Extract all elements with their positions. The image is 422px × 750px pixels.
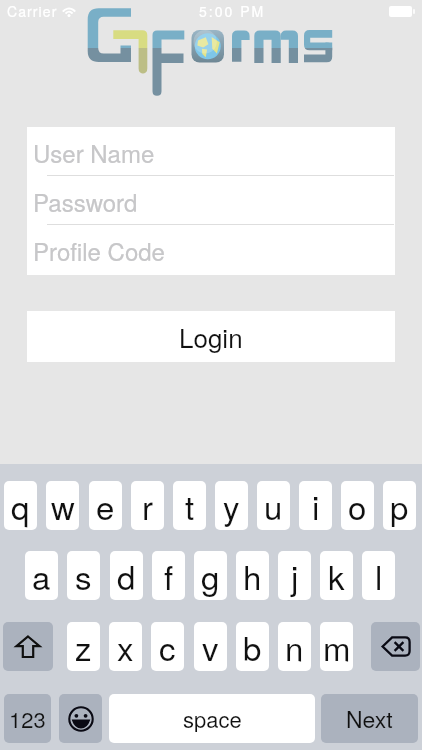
staticText: p bbox=[390, 482, 409, 529]
button[interactable]: z bbox=[67, 622, 100, 671]
staticText: f bbox=[164, 552, 174, 599]
button[interactable]: s bbox=[67, 551, 100, 600]
staticText: Login bbox=[179, 318, 243, 355]
button[interactable]: b bbox=[236, 622, 269, 671]
button[interactable]: Password bbox=[27, 176, 395, 225]
button[interactable]: d bbox=[110, 551, 143, 600]
button[interactable]: e bbox=[89, 481, 122, 530]
staticText: Next bbox=[346, 702, 393, 735]
button[interactable]: p bbox=[383, 481, 416, 530]
button[interactable]: Emoji bbox=[59, 694, 102, 743]
button[interactable]: User Name bbox=[27, 127, 395, 176]
button[interactable]: Backspace bbox=[371, 622, 420, 671]
staticText: g bbox=[201, 552, 220, 599]
staticText: x bbox=[117, 623, 134, 670]
staticText: u bbox=[264, 482, 283, 529]
staticText: r bbox=[142, 482, 153, 529]
staticText: y bbox=[223, 482, 240, 529]
staticText: o bbox=[348, 482, 367, 529]
button[interactable]: u bbox=[257, 481, 290, 530]
button[interactable]: l bbox=[362, 551, 395, 600]
button[interactable]: t bbox=[173, 481, 206, 530]
button[interactable]: m bbox=[320, 622, 353, 671]
button[interactable]: r bbox=[131, 481, 164, 530]
staticText: Carrier bbox=[7, 1, 58, 21]
button[interactable]: a bbox=[25, 551, 58, 600]
staticText: w bbox=[51, 482, 75, 529]
staticText: h bbox=[243, 552, 262, 599]
staticText: b bbox=[243, 623, 262, 670]
staticText: z bbox=[75, 623, 92, 670]
staticText: a bbox=[32, 552, 51, 599]
staticText: 5:00 PM bbox=[199, 1, 266, 21]
staticText: Profile Code bbox=[33, 233, 165, 267]
staticText: i bbox=[312, 482, 320, 529]
staticText: k bbox=[328, 552, 345, 599]
staticText: c bbox=[159, 623, 176, 670]
staticText: l bbox=[375, 552, 383, 599]
button[interactable]: j bbox=[278, 551, 311, 600]
button[interactable]: Next bbox=[321, 694, 418, 743]
button[interactable]: k bbox=[320, 551, 353, 600]
staticText: User Name bbox=[33, 135, 155, 169]
button[interactable]: space bbox=[109, 694, 315, 743]
staticText: space bbox=[183, 703, 242, 735]
staticText: s bbox=[75, 552, 92, 599]
button[interactable]: q bbox=[4, 481, 37, 530]
button[interactable]: n bbox=[278, 622, 311, 671]
staticText: e bbox=[96, 482, 115, 529]
button[interactable]: g bbox=[194, 551, 227, 600]
staticText: 123 bbox=[9, 703, 46, 735]
button[interactable]: i bbox=[299, 481, 332, 530]
staticText: Password bbox=[33, 184, 138, 218]
staticText: j bbox=[291, 552, 299, 599]
button[interactable]: h bbox=[236, 551, 269, 600]
button[interactable]: Login bbox=[27, 311, 395, 362]
button[interactable]: y bbox=[215, 481, 248, 530]
button[interactable]: 123 bbox=[4, 694, 51, 743]
staticText: t bbox=[185, 482, 195, 529]
staticText: q bbox=[11, 482, 30, 529]
button[interactable]: o bbox=[341, 481, 374, 530]
button[interactable]: v bbox=[194, 622, 227, 671]
button[interactable]: Profile Code bbox=[27, 225, 395, 274]
button[interactable]: c bbox=[151, 622, 184, 671]
staticText: m bbox=[323, 623, 351, 670]
staticText: d bbox=[117, 552, 136, 599]
button[interactable]: w bbox=[46, 481, 79, 530]
staticText: v bbox=[202, 623, 219, 670]
button[interactable]: Shift bbox=[3, 622, 53, 671]
staticText: n bbox=[285, 623, 304, 670]
button[interactable]: x bbox=[109, 622, 142, 671]
button[interactable]: f bbox=[152, 551, 185, 600]
